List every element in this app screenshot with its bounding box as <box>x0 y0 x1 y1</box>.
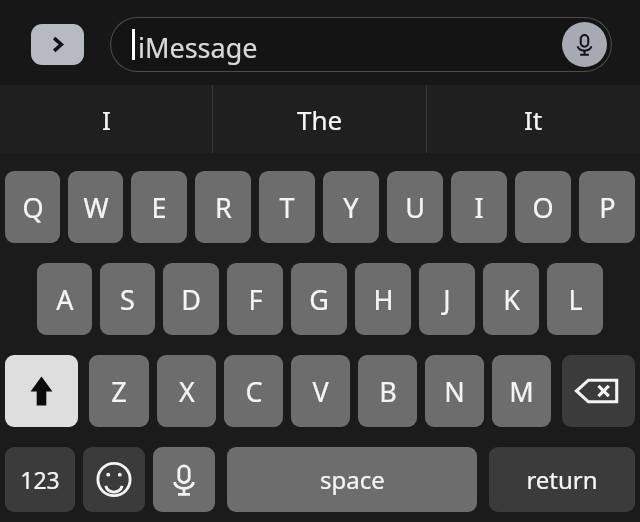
button[interactable]: It <box>427 85 640 153</box>
button[interactable]: Z <box>89 355 149 427</box>
staticText: space <box>320 463 385 496</box>
button[interactable]: O <box>515 171 571 243</box>
staticText: K <box>503 281 520 318</box>
button[interactable]: Q <box>5 171 60 243</box>
staticText: U <box>405 189 425 226</box>
button[interactable]: J <box>419 263 475 335</box>
button[interactable]: S <box>100 263 155 335</box>
staticText: return <box>526 463 598 496</box>
staticText: It <box>524 102 543 137</box>
staticText: Y <box>343 189 359 226</box>
staticText: Q <box>22 189 44 226</box>
button[interactable]: X <box>157 355 216 427</box>
button[interactable]: space <box>227 447 477 512</box>
staticText: 123 <box>20 464 60 495</box>
staticText: F <box>248 281 263 318</box>
button[interactable]: M <box>492 355 551 427</box>
button[interactable]: P <box>579 171 635 243</box>
button[interactable]: Dictate <box>562 22 607 67</box>
staticText: D <box>181 281 201 318</box>
staticText: Z <box>111 373 127 410</box>
button[interactable]: L <box>547 263 603 335</box>
staticText: X <box>179 373 195 410</box>
button[interactable]: G <box>291 263 347 335</box>
button[interactable]: V <box>291 355 350 427</box>
button[interactable]: Expand apps <box>31 24 84 65</box>
button[interactable]: N <box>425 355 484 427</box>
staticText: R <box>215 189 232 226</box>
staticText: M <box>509 373 534 410</box>
staticText: V <box>312 373 329 410</box>
staticText: iMessage <box>138 29 258 66</box>
staticText: W <box>83 189 109 226</box>
button[interactable]: B <box>358 355 417 427</box>
staticText: I <box>474 189 484 226</box>
button[interactable]: F <box>227 263 283 335</box>
button[interactable]: H <box>355 263 411 335</box>
staticText: G <box>309 281 329 318</box>
button[interactable]: Voice input <box>153 447 215 512</box>
button[interactable]: C <box>224 355 283 427</box>
button[interactable]: W <box>68 171 123 243</box>
staticText: J <box>443 281 451 318</box>
staticText: A <box>56 281 74 318</box>
button[interactable]: A <box>37 263 92 335</box>
staticText: C <box>245 373 263 410</box>
staticText: O <box>532 189 554 226</box>
staticText: T <box>279 189 295 226</box>
staticText: E <box>151 189 167 226</box>
button[interactable]: U <box>387 171 443 243</box>
staticText: H <box>373 281 394 318</box>
button[interactable]: Shift <box>5 355 78 427</box>
button[interactable]: K <box>483 263 539 335</box>
button[interactable]: Emoji <box>83 447 145 512</box>
button[interactable]: D <box>163 263 219 335</box>
button[interactable]: iMessage <box>110 17 612 72</box>
staticText: P <box>599 189 616 226</box>
button[interactable]: 123 <box>5 447 75 512</box>
button[interactable]: return <box>489 447 635 512</box>
button[interactable]: Y <box>323 171 379 243</box>
button[interactable]: I <box>451 171 507 243</box>
button[interactable]: T <box>259 171 315 243</box>
staticText: I <box>102 102 111 137</box>
staticText: N <box>444 373 465 410</box>
staticText: The <box>297 102 343 137</box>
staticText: L <box>568 281 583 318</box>
button[interactable]: The <box>213 85 426 153</box>
button[interactable]: I <box>0 85 212 153</box>
staticText: S <box>120 281 135 318</box>
button[interactable]: Backspace <box>562 355 635 427</box>
button[interactable]: E <box>131 171 187 243</box>
button[interactable]: R <box>195 171 251 243</box>
staticText: B <box>379 373 397 410</box>
